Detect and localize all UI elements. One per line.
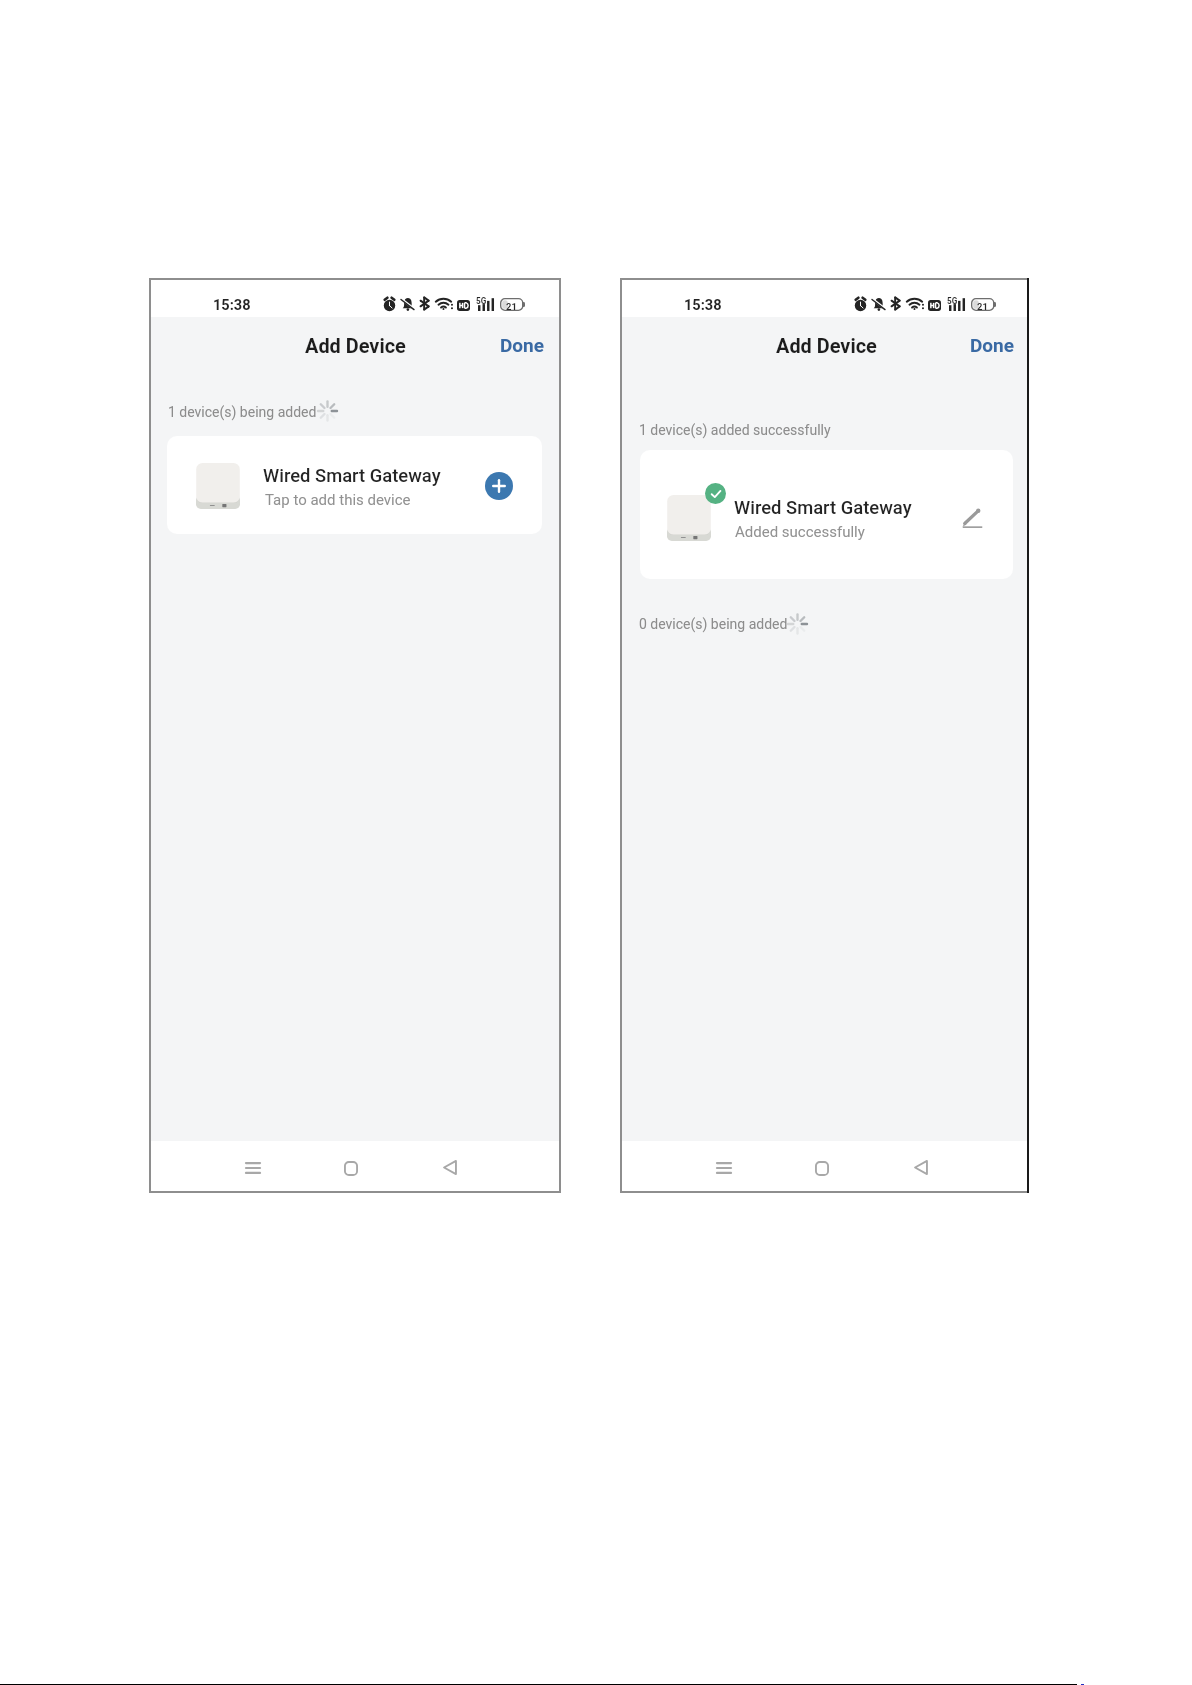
staticText: 5G	[476, 296, 487, 306]
staticText: 1 device(s) being added	[168, 404, 317, 420]
button[interactable]: Recent apps	[233, 1148, 273, 1188]
staticText: Done	[970, 334, 1015, 356]
button[interactable]: Done	[482, 324, 563, 366]
staticText: Wired Smart Gateway	[263, 465, 441, 487]
staticText: Done	[500, 334, 545, 356]
staticText: 15:38	[213, 296, 251, 313]
staticText: Add Device	[305, 335, 406, 358]
staticText: 5G	[947, 296, 958, 306]
button[interactable]: Home	[802, 1148, 842, 1188]
staticText: 0 device(s) being added	[639, 616, 788, 632]
button[interactable]: Add this device	[485, 472, 513, 500]
staticText: Add Device	[776, 335, 877, 358]
staticText: 21	[506, 301, 517, 312]
staticText: 1 device(s) added successfully	[639, 422, 831, 438]
staticText: 21	[977, 301, 988, 312]
staticText: Tap to add this device	[265, 491, 411, 509]
staticText: Wired Smart Gateway	[734, 497, 912, 519]
button[interactable]: Back	[430, 1147, 470, 1187]
button[interactable]: Done	[952, 324, 1033, 366]
staticText: 15:38	[684, 296, 722, 313]
staticText: Added successfully	[735, 523, 865, 541]
button[interactable]: Home	[331, 1148, 371, 1188]
button[interactable]	[640, 450, 1013, 579]
button[interactable]: Back	[901, 1147, 941, 1187]
button[interactable]: Recent apps	[704, 1148, 744, 1188]
button[interactable]: Rename device	[957, 503, 987, 533]
button[interactable]	[167, 436, 542, 534]
